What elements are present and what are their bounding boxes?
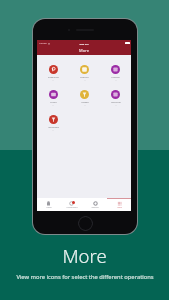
staticText: Home <box>46 206 52 209</box>
button[interactable]: Calendar <box>100 65 131 85</box>
button[interactable]: Settings <box>83 198 107 211</box>
staticText: Carrier <box>39 42 47 45</box>
button[interactable]: Directory <box>69 65 100 85</box>
staticText: Multimedia <box>48 126 59 129</box>
staticText: Photos <box>50 101 57 104</box>
staticText: ... <box>84 104 86 107</box>
button[interactable]: Notifications <box>60 198 83 211</box>
staticText: Settings <box>91 206 99 209</box>
button[interactable]: Resources <box>100 90 131 110</box>
staticText: ... <box>115 104 117 107</box>
button[interactable]: Photos <box>37 90 69 110</box>
staticText: Widgets <box>81 101 89 104</box>
staticText: Resources <box>111 101 121 104</box>
staticText: Directory <box>80 76 89 79</box>
staticText: ... <box>84 79 86 82</box>
staticText: More <box>79 48 89 53</box>
button[interactable]: Home <box>37 198 60 211</box>
staticText: View more icons for select the different… <box>16 273 154 281</box>
button[interactable]: Widgets <box>69 90 100 110</box>
button[interactable]: PowerPoint <box>37 65 69 85</box>
button[interactable]: More <box>107 198 131 211</box>
staticText: ... <box>52 104 54 107</box>
button[interactable]: Multimedia <box>37 115 69 135</box>
staticText: ... <box>52 79 54 82</box>
staticText: More <box>62 243 107 268</box>
staticText: ... <box>115 79 117 82</box>
staticText: ... <box>52 129 54 132</box>
staticText: PowerPoint <box>48 76 59 79</box>
staticText: 9:08 PM <box>79 42 89 45</box>
staticText: Calendar <box>111 76 120 79</box>
staticText: More <box>117 206 122 209</box>
staticText: Notifications <box>66 206 78 209</box>
